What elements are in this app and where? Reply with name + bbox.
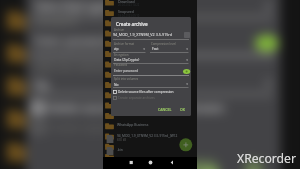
staticText: Snapseed: [118, 9, 134, 14]
staticText: 20.04.2023 14:22: [118, 3, 140, 7]
staticText: No: [114, 82, 119, 86]
staticText: XRecorder: [237, 150, 297, 167]
button[interactable]: Delete source files: [113, 90, 117, 94]
staticText: Data (ZipCrypto): [114, 57, 140, 61]
staticText: Download: [118, 0, 135, 4]
staticText: Delete source files after compression: [118, 90, 174, 94]
button[interactable]: Delete source files: [32, 102, 45, 115]
staticText: No: [35, 76, 51, 89]
staticText: 94_MOD_1.9_XTN9M_V2 3.5-915rd: [113, 32, 173, 37]
staticText: 830 kB: [117, 138, 127, 142]
staticText: Create archive: [116, 21, 148, 27]
staticText: CANCEL: [175, 156, 220, 169]
staticText: Password: [35, 16, 80, 29]
staticText: Archive: [114, 28, 125, 32]
staticText: Password: [114, 63, 128, 67]
button[interactable]: CANCEL: [156, 105, 170, 112]
button[interactable]: OK: [239, 150, 265, 169]
staticText: Fast: [152, 46, 159, 50]
staticText: Create separate archives: [48, 121, 166, 134]
staticText: Split into volumes: [35, 61, 115, 73]
staticText: 94_MOD_1.9_XTN9M_V2 3.5-915rd_JW12: [117, 134, 178, 138]
staticText: zip: [114, 46, 119, 50]
staticText: CANCEL: [158, 107, 172, 112]
button[interactable]: CANCEL: [169, 150, 214, 169]
button[interactable]: OK: [178, 105, 186, 112]
button[interactable]: Show password: [255, 35, 278, 51]
staticText: Data (ZipCrypto): [35, 0, 118, 9]
staticText: OK: [246, 156, 262, 169]
staticText: WhatsApp Business: [117, 122, 149, 127]
staticText: OK: [180, 107, 185, 112]
staticText: .bin: [117, 148, 123, 152]
staticText: Create separate archives: [118, 96, 155, 100]
staticText: Enter password: [35, 32, 115, 45]
staticText: Delete source files after compression: [48, 102, 226, 115]
staticText: Archive format: [114, 42, 135, 46]
staticText: Encryption: [114, 53, 129, 57]
button[interactable]: Show password: [183, 69, 190, 74]
staticText: Split into volumes: [114, 77, 139, 81]
staticText: Compression level: [151, 42, 176, 46]
button[interactable]: Add: [179, 138, 193, 152]
staticText: 18.04.2023 09:10: [118, 14, 140, 18]
staticText: Enter password: [114, 68, 139, 72]
